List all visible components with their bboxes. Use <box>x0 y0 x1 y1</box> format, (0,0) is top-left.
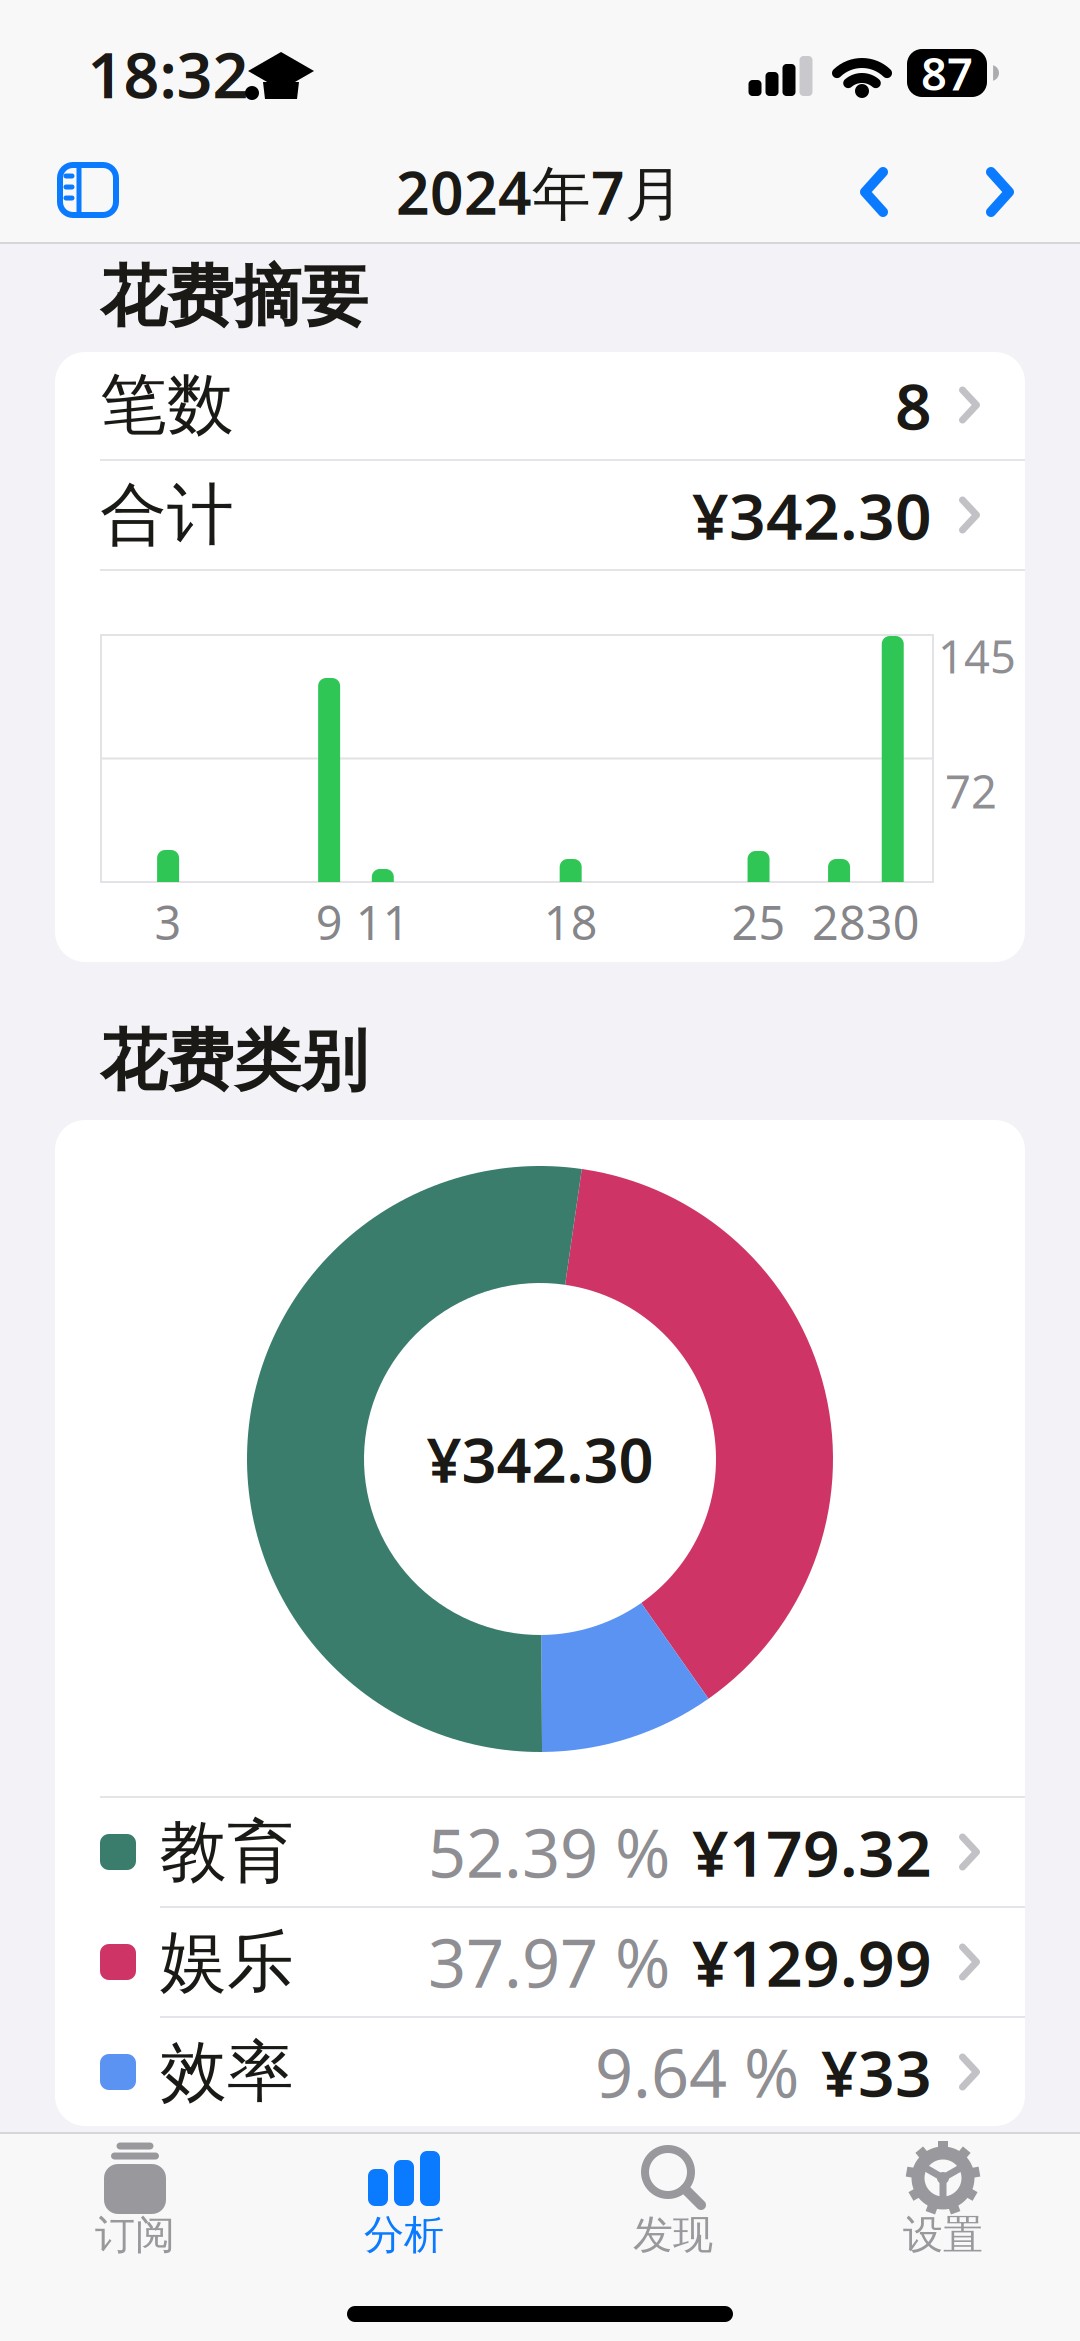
staticText: 2024年7月 <box>396 153 684 231</box>
staticText: 花费类别 <box>100 1020 368 1102</box>
button[interactable]: 教育 <box>55 1798 1025 1906</box>
staticText: 37.97 % <box>428 1918 670 2006</box>
staticText: ¥129.99 <box>692 1919 932 2004</box>
button[interactable]: 合计 <box>55 461 1025 569</box>
staticText: 9.64 % <box>595 2028 799 2116</box>
staticText: 52.39 % <box>428 1808 670 1896</box>
staticText: 87 <box>921 43 973 103</box>
staticText: 订阅 <box>95 2210 175 2259</box>
staticText: 8 <box>895 362 932 447</box>
staticText: 9 <box>316 891 343 953</box>
button[interactable] <box>958 145 1042 239</box>
staticText: 72 <box>945 761 997 821</box>
staticText: ¥179.32 <box>692 1809 932 1894</box>
button[interactable]: 设置 <box>810 2132 1080 2341</box>
staticText: 3 <box>155 891 182 953</box>
staticText: 分析 <box>364 2210 444 2259</box>
staticText: ¥33 <box>821 2029 932 2114</box>
staticText: 教育 <box>160 1811 294 1893</box>
button[interactable]: 娱乐 <box>55 1908 1025 2016</box>
staticText: 11 <box>356 891 410 953</box>
staticText: 30 <box>866 891 920 953</box>
staticText: 效率 <box>160 2031 294 2113</box>
button[interactable] <box>832 145 916 239</box>
staticText: 合计 <box>100 474 234 556</box>
staticText: 笔数 <box>100 364 234 446</box>
staticText: 28 <box>812 891 866 953</box>
button[interactable]: 效率 <box>55 2018 1025 2126</box>
staticText: 发现 <box>633 2210 713 2259</box>
button[interactable]: 分析 <box>270 2132 540 2341</box>
staticText: 设置 <box>903 2210 983 2259</box>
staticText: ¥342.30 <box>692 472 932 557</box>
staticText: ¥342.30 <box>426 1418 653 1500</box>
staticText: 25 <box>731 891 785 953</box>
staticText: 娱乐 <box>160 1921 294 2003</box>
staticText: 18:32 <box>87 32 248 116</box>
button[interactable]: 发现 <box>540 2132 810 2341</box>
staticText: 花费摘要 <box>100 256 368 338</box>
button[interactable]: 订阅 <box>0 2132 270 2341</box>
staticText: 18 <box>544 891 598 953</box>
button[interactable] <box>28 135 148 245</box>
staticText: 145 <box>938 626 1016 686</box>
button[interactable]: 笔数 <box>55 351 1025 459</box>
